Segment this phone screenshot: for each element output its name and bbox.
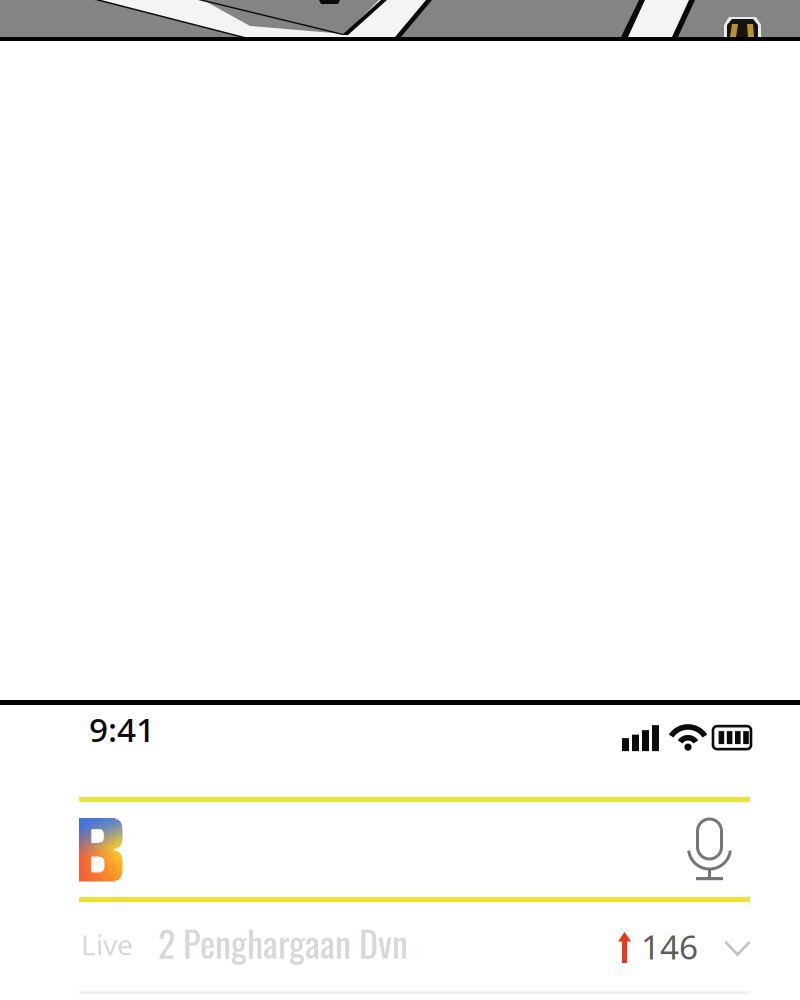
staticText: 2 Penghargaan Dvn [158,916,408,969]
staticText: 146 [641,924,698,969]
staticText: 9:41 [89,707,155,751]
button[interactable] [0,797,800,902]
staticText: Live [81,926,133,963]
button[interactable]: Live [0,902,800,991]
